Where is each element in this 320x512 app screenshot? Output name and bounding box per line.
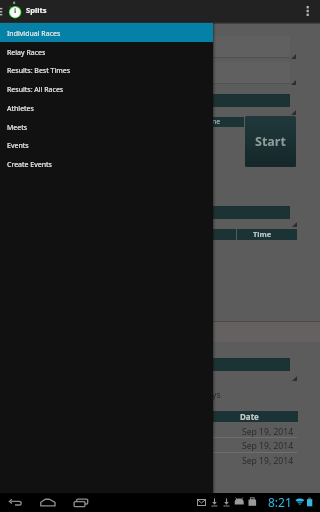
staticText: Date (240, 411, 259, 422)
staticText: Splits (26, 5, 47, 15)
button[interactable]: Athletes (0, 98, 213, 117)
staticText: Athletes (7, 104, 34, 114)
button[interactable]: Individual Races (0, 23, 213, 42)
button[interactable]: Create Events (0, 154, 213, 173)
staticText: Sep 19, 2014 (242, 455, 294, 467)
staticText: Individual Races (7, 29, 61, 39)
button[interactable]: Back (8, 497, 22, 508)
button[interactable]: Meets (0, 117, 213, 136)
staticText: Results: Best Times (7, 66, 71, 76)
button[interactable]: Events (0, 135, 213, 154)
button[interactable]: Recent apps (71, 496, 90, 509)
staticText: Relay Races (7, 48, 46, 58)
button[interactable]: Open navigation drawer (0, 4, 6, 18)
staticText: Events (7, 141, 29, 151)
staticText: 8:21 (268, 494, 292, 510)
staticText: ne (212, 117, 221, 127)
staticText: Create Events (7, 160, 52, 170)
staticText: Meets (7, 123, 28, 133)
button[interactable]: Start (245, 116, 296, 167)
staticText: Results: All Races (7, 85, 64, 95)
staticText: Sep 19, 2014 (242, 440, 294, 452)
staticText: Start (255, 133, 286, 150)
staticText: Sep 19, 2014 (242, 426, 294, 438)
button[interactable]: Home (39, 496, 57, 508)
staticText: ys (212, 389, 221, 401)
button[interactable]: More options (301, 2, 314, 20)
button[interactable]: Relay Races (0, 42, 213, 61)
staticText: Time (253, 229, 272, 239)
button[interactable]: Results: All Races (0, 79, 213, 98)
button[interactable]: Results: Best Times (0, 60, 213, 79)
